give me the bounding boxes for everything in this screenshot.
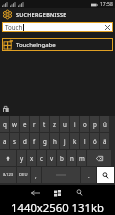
button[interactable]: z [50, 116, 59, 132]
button[interactable]: e [20, 116, 29, 132]
button[interactable]: j [60, 133, 69, 149]
staticText: t [43, 120, 46, 128]
button[interactable]: f [30, 133, 39, 149]
button[interactable]: k [70, 133, 79, 149]
staticText: ü [103, 120, 107, 128]
button[interactable] [42, 167, 80, 183]
button[interactable]: ä [100, 133, 109, 149]
staticText: z [53, 120, 56, 128]
staticText: c [40, 154, 43, 162]
staticText: Touch [5, 23, 23, 31]
staticText: r [33, 120, 36, 128]
staticText: y [20, 154, 24, 162]
button[interactable]: n [67, 150, 76, 166]
staticText: Toucheingabe [16, 41, 56, 49]
staticText: e [23, 120, 27, 128]
button[interactable]: Search [97, 167, 114, 183]
button[interactable]: q [0, 116, 9, 132]
button[interactable]: w [10, 116, 19, 132]
button[interactable]: r [30, 116, 39, 132]
button[interactable]: h [50, 133, 59, 149]
staticText: k [73, 137, 77, 145]
staticText: b [60, 154, 64, 162]
button[interactable]: x [27, 150, 36, 166]
other: Shift [6, 156, 10, 161]
button[interactable]: g [40, 133, 49, 149]
button[interactable]: Shift [0, 150, 16, 166]
button[interactable]: Backspace [87, 150, 111, 166]
button[interactable]: m [77, 150, 86, 166]
staticText: m [79, 154, 85, 162]
other: Backspace [96, 156, 103, 161]
button[interactable]: Search [69, 185, 90, 200]
staticText: n [70, 154, 74, 162]
button[interactable]: Home [47, 185, 68, 200]
staticText: ö [93, 137, 97, 145]
staticText: &123 [3, 172, 14, 178]
button[interactable]: . [81, 167, 96, 183]
staticText: j [64, 137, 66, 145]
staticText: . [88, 171, 90, 179]
button[interactable]: c [37, 150, 46, 166]
staticText: h [53, 137, 57, 145]
staticText: DEU [19, 172, 28, 178]
button[interactable]: Toucheingabe [2, 38, 113, 51]
staticText: s [13, 137, 16, 145]
staticText: i [74, 120, 76, 128]
staticText: l [84, 137, 86, 145]
staticText: f [33, 137, 36, 145]
staticText: 17:58 [100, 1, 113, 8]
button[interactable]: DEU [17, 167, 30, 183]
staticText: d [23, 137, 27, 145]
button[interactable]: l [80, 133, 89, 149]
button[interactable]: , [31, 167, 41, 183]
staticText: a [3, 137, 7, 145]
staticText: q [3, 120, 7, 128]
staticText: o [83, 120, 87, 128]
button[interactable]: v [47, 150, 56, 166]
button[interactable]: p [90, 116, 99, 132]
button[interactable]: ü [100, 116, 109, 132]
button[interactable]: t [40, 116, 49, 132]
button[interactable]: ö [90, 133, 99, 149]
staticText: 1440x2560 131kb [11, 200, 104, 215]
button[interactable]: i [70, 116, 79, 132]
staticText: u [63, 120, 67, 128]
button[interactable]: Clear search [105, 25, 110, 30]
button[interactable]: y [17, 150, 26, 166]
staticText: p [93, 120, 97, 128]
button[interactable]: Back [25, 185, 46, 200]
button[interactable]: s [10, 133, 19, 149]
staticText: v [50, 154, 54, 162]
staticText: w [12, 120, 17, 128]
button[interactable]: Store [3, 106, 9, 112]
button[interactable]: a [0, 133, 9, 149]
button[interactable]: o [80, 116, 89, 132]
button[interactable]: &123 [0, 167, 16, 183]
staticText: ä [103, 137, 107, 145]
button[interactable]: d [20, 133, 29, 149]
button[interactable]: b [57, 150, 66, 166]
button[interactable]: u [60, 116, 69, 132]
staticText: g [43, 137, 47, 145]
staticText: SUCHERGEBNISSE [16, 11, 67, 18]
staticText: x [30, 154, 34, 162]
staticText: , [35, 171, 37, 179]
other: Search [102, 172, 109, 179]
button[interactable]: Touch [2, 22, 113, 32]
